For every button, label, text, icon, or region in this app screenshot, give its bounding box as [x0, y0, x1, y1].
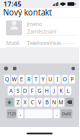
staticText: C	[31, 99, 34, 106]
button[interactable]: ,	[17, 109, 23, 118]
staticText: Y	[42, 76, 45, 83]
staticText: K	[60, 87, 63, 94]
button[interactable]: X	[22, 98, 28, 107]
staticText: Nový kontakt	[3, 7, 52, 18]
staticText: G	[37, 87, 41, 94]
staticText: Jméno	[27, 20, 42, 27]
staticText: X	[24, 99, 27, 106]
staticText: H	[45, 87, 49, 94]
button[interactable]: T	[33, 75, 39, 84]
button[interactable]: M	[58, 98, 64, 107]
button[interactable]: O	[62, 75, 68, 84]
staticText: V	[38, 99, 41, 106]
staticText: M	[59, 99, 64, 106]
button[interactable]: More options	[70, 66, 76, 71]
staticText: I	[56, 76, 58, 83]
button[interactable]: G	[36, 86, 42, 95]
button[interactable]: Clipboard	[12, 66, 17, 71]
button[interactable]: Y	[40, 75, 46, 84]
staticText: S	[16, 87, 19, 94]
button[interactable]: S	[15, 86, 21, 95]
button[interactable]: R	[26, 75, 32, 84]
staticText: U	[48, 76, 52, 83]
button[interactable]: J	[51, 86, 57, 95]
staticText: Mobil	[6, 39, 19, 46]
staticText: W	[12, 76, 17, 83]
staticText: D	[23, 87, 27, 94]
staticText: R	[27, 76, 30, 83]
button[interactable]: Q	[4, 75, 10, 84]
button[interactable]: A	[8, 86, 14, 95]
staticText: P	[70, 76, 73, 83]
button[interactable]: D	[22, 86, 28, 95]
staticText: Z	[16, 99, 19, 106]
button[interactable]: Další	[61, 109, 72, 118]
button[interactable]: B	[44, 98, 50, 107]
staticText: ,	[20, 110, 21, 117]
staticText: O	[63, 76, 67, 83]
button[interactable]: Shift	[5, 98, 14, 107]
button[interactable]: U	[47, 75, 53, 84]
button[interactable]: H	[44, 86, 50, 95]
button[interactable]: E	[18, 75, 24, 84]
staticText: Další	[62, 111, 71, 116]
button[interactable]: Jméno	[27, 20, 76, 28]
staticText: Q	[5, 76, 9, 83]
button[interactable]: Z	[15, 98, 21, 107]
button[interactable]	[24, 109, 52, 118]
button[interactable]: .	[54, 109, 60, 118]
staticText: N	[52, 99, 56, 106]
button[interactable]: N	[51, 98, 57, 107]
staticText: .	[56, 110, 57, 117]
staticText: Zaměstnání	[27, 28, 56, 35]
staticText: F	[31, 87, 34, 94]
button[interactable]: I	[54, 75, 60, 84]
button[interactable]: W	[11, 75, 17, 84]
staticText: L	[67, 87, 70, 94]
button[interactable]: P	[69, 75, 75, 84]
button[interactable]: L	[65, 86, 71, 95]
button[interactable]: Delete	[65, 98, 74, 107]
button[interactable]: V	[36, 98, 43, 107]
staticText: Telefonní číslo	[27, 39, 61, 46]
staticText: B	[45, 99, 48, 106]
staticText: ?123	[7, 111, 15, 116]
staticText: J	[53, 87, 54, 94]
staticText: T	[34, 76, 37, 83]
button[interactable]: C	[29, 98, 35, 107]
button[interactable]: K	[58, 86, 64, 95]
button[interactable]: ?123	[7, 109, 16, 118]
button[interactable]: Mobil	[0, 38, 79, 48]
button[interactable]: Keyboard settings	[3, 65, 9, 71]
staticText: E	[20, 76, 23, 83]
staticText: 17:45	[3, 0, 21, 8]
staticText: A	[9, 87, 12, 94]
button[interactable]: F	[29, 86, 35, 95]
button[interactable]: Zaměstnání	[27, 28, 76, 35]
